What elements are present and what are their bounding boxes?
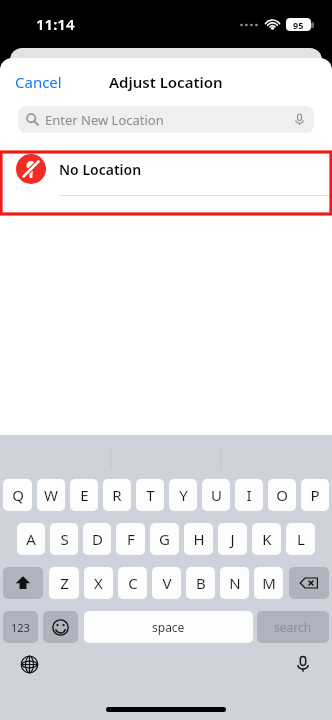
other: Voice input: [293, 113, 306, 126]
staticText: V: [162, 573, 172, 593]
staticText: K: [262, 529, 272, 549]
button[interactable]: X: [84, 567, 113, 599]
button[interactable]: space: [84, 611, 253, 643]
staticText: J: [230, 529, 235, 549]
button[interactable]: L: [286, 523, 315, 555]
staticText: M: [262, 573, 276, 593]
staticText: G: [159, 529, 170, 549]
staticText: Cancel: [15, 72, 62, 92]
button[interactable]: search: [257, 611, 329, 643]
staticText: Y: [179, 485, 188, 505]
button[interactable]: D: [83, 523, 111, 555]
staticText: N: [229, 573, 241, 593]
staticText: Z: [60, 573, 69, 593]
button[interactable]: 123: [3, 611, 38, 643]
button[interactable]: O: [268, 479, 296, 511]
staticText: Enter New Location: [45, 111, 293, 129]
staticText: 123: [11, 620, 30, 635]
staticText: W: [44, 485, 58, 505]
button[interactable]: Emoji: [43, 611, 78, 643]
button[interactable]: Q: [3, 479, 32, 511]
button[interactable]: Y: [169, 479, 197, 511]
staticText: P: [310, 485, 320, 505]
button[interactable]: F: [116, 523, 145, 555]
button[interactable]: H: [184, 523, 213, 555]
button[interactable]: K: [252, 523, 281, 555]
staticText: H: [193, 529, 205, 549]
button[interactable]: No Location: [0, 143, 332, 195]
button[interactable]: Dictation: [292, 653, 314, 675]
button[interactable]: V: [152, 567, 181, 599]
staticText: S: [60, 529, 69, 549]
staticText: 11:14: [36, 14, 75, 34]
button[interactable]: Cancel: [0, 64, 77, 100]
button[interactable]: R: [103, 479, 131, 511]
staticText: X: [94, 573, 103, 593]
staticText: Q: [12, 485, 24, 505]
button[interactable]: T: [136, 479, 164, 511]
staticText: E: [80, 485, 89, 505]
staticText: 95: [293, 19, 304, 31]
button[interactable]: I: [235, 479, 263, 511]
staticText: A: [26, 529, 36, 549]
button[interactable]: Shift: [3, 567, 43, 599]
staticText: O: [276, 485, 288, 505]
button[interactable]: N: [220, 567, 249, 599]
button[interactable]: C: [118, 567, 147, 599]
button[interactable]: S: [50, 523, 78, 555]
button[interactable]: G: [150, 523, 179, 555]
button[interactable]: B: [186, 567, 215, 599]
staticText: L: [297, 529, 305, 549]
staticText: C: [128, 573, 138, 593]
staticText: F: [127, 529, 135, 549]
button[interactable]: Change keyboard: [18, 653, 40, 675]
staticText: space: [152, 619, 185, 635]
staticText: I: [246, 485, 252, 505]
staticText: T: [146, 485, 155, 505]
button[interactable]: U: [202, 479, 230, 511]
button[interactable]: Enter New Location: [18, 106, 314, 133]
button[interactable]: P: [301, 479, 329, 511]
button[interactable]: W: [37, 479, 65, 511]
staticText: Adjust Location: [109, 72, 223, 92]
staticText: U: [211, 485, 222, 505]
staticText: R: [112, 485, 122, 505]
staticText: D: [92, 529, 103, 549]
button[interactable]: Z: [49, 567, 79, 599]
button[interactable]: A: [17, 523, 45, 555]
staticText: search: [274, 619, 312, 635]
button[interactable]: Backspace: [289, 567, 329, 599]
button[interactable]: M: [254, 567, 283, 599]
button[interactable]: E: [70, 479, 98, 511]
button[interactable]: J: [218, 523, 247, 555]
staticText: B: [196, 573, 206, 593]
staticText: No Location: [59, 160, 142, 179]
